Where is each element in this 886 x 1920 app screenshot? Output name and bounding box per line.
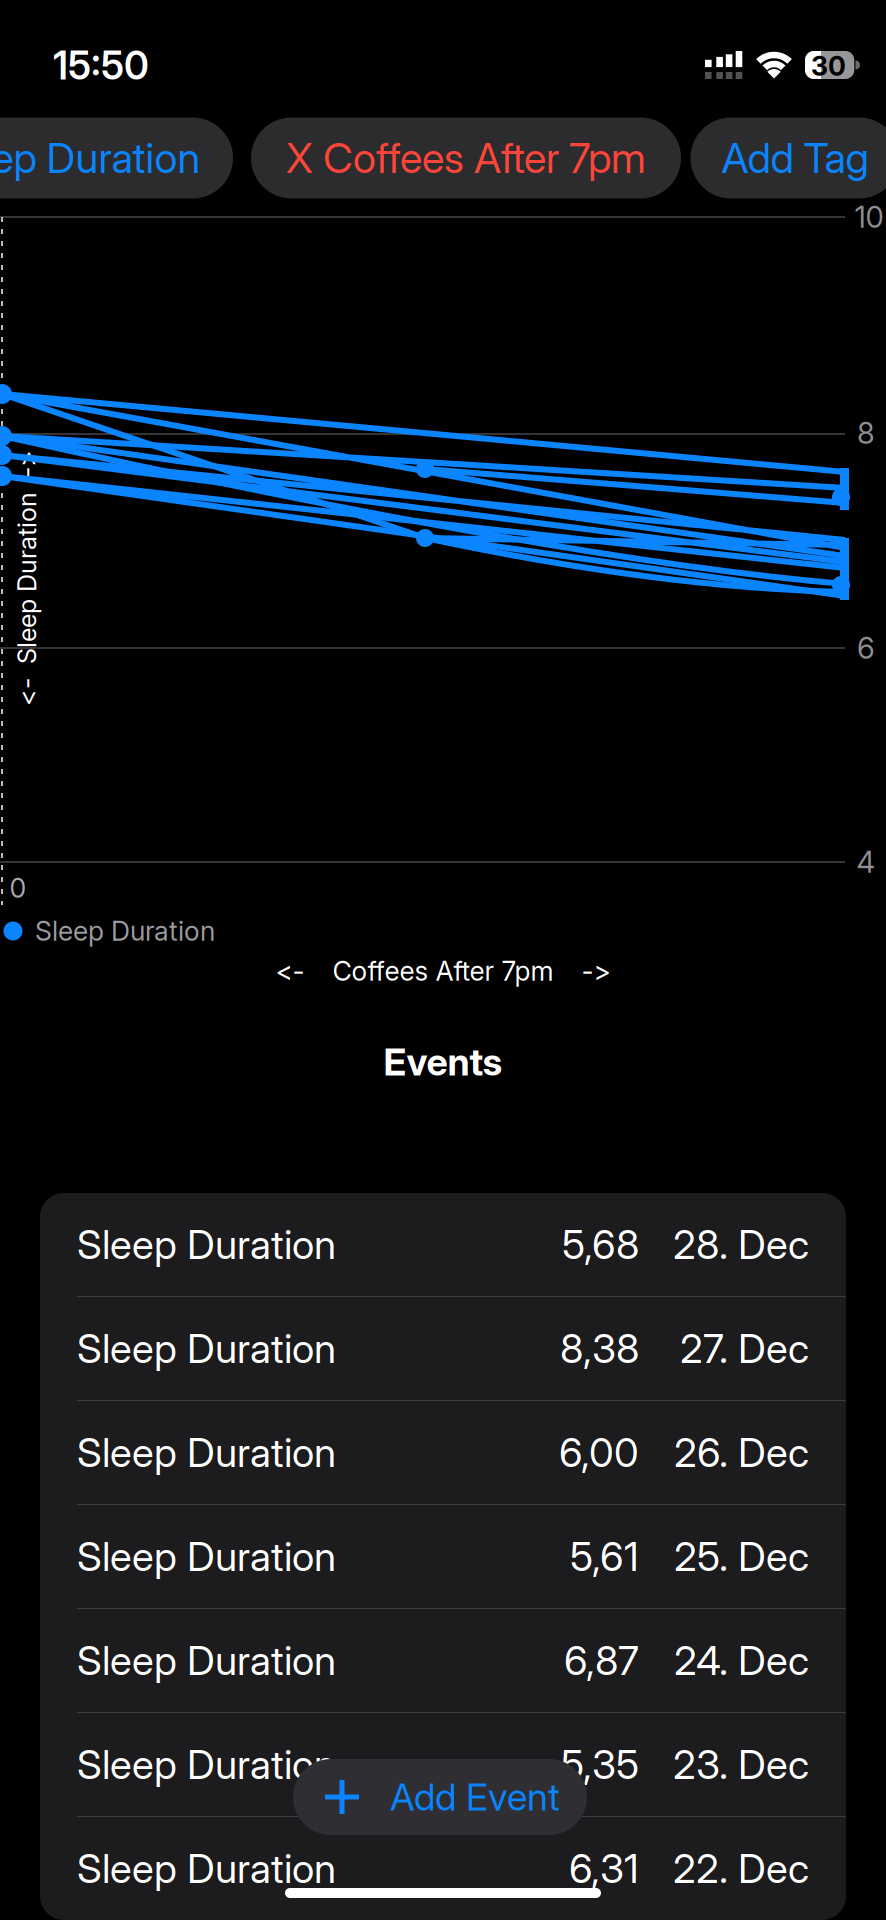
button[interactable]: Previous tag [275, 955, 304, 987]
staticText: 6,00 [559, 1429, 639, 1476]
button[interactable]: Add Event [293, 1759, 587, 1835]
button[interactable]: Sleep Duration [40, 1193, 846, 1296]
button[interactable]: Sleep Duration [40, 1609, 846, 1712]
staticText: 26. Dec [674, 1429, 809, 1476]
staticText: 15:50 [53, 43, 149, 88]
staticText: 22. Dec [673, 1845, 809, 1892]
staticText: 0 [9, 872, 26, 904]
staticText: 8 [857, 416, 875, 450]
staticText: Sleep Duration [77, 1533, 336, 1580]
button[interactable]: Sleep Duration [40, 1817, 846, 1920]
staticText: Events [383, 1040, 502, 1084]
staticText: Sleep Duration [77, 1741, 336, 1788]
staticText: Sleep Duration [77, 1637, 336, 1684]
staticText: 24. Dec [674, 1637, 809, 1684]
button[interactable]: Sleep Duration [40, 1401, 846, 1504]
button[interactable]: Sleep Duration [40, 1297, 846, 1400]
staticText: Sleep Duration [77, 1845, 336, 1892]
staticText: -‌> [581, 955, 610, 987]
staticText: Sleep Duration [0, 134, 200, 182]
staticText: 30 [811, 50, 846, 82]
staticText: <‌- Sleep Duration -‌> [0, 563, 155, 593]
staticText: Sleep Duration [35, 915, 215, 947]
staticText: Sleep Duration [77, 1325, 336, 1372]
staticText: 23. Dec [673, 1741, 809, 1788]
staticText: 6,31 [569, 1845, 639, 1892]
staticText: 5,61 [570, 1533, 639, 1580]
button[interactable]: Sleep Duration [40, 1505, 846, 1608]
staticText: 28. Dec [673, 1221, 809, 1268]
staticText: Add Event [390, 1775, 560, 1819]
staticText: 4 [856, 845, 875, 879]
staticText: Sleep Duration [77, 1429, 336, 1476]
staticText [440, 1880, 446, 1906]
button[interactable]: Sleep Duration [40, 1713, 846, 1816]
staticText: 25. Dec [674, 1533, 809, 1580]
staticText: 27. Dec [680, 1325, 809, 1372]
button[interactable]: Sleep Duration [0, 117, 233, 198]
staticText: 8,38 [560, 1325, 639, 1372]
staticText: <‌- [275, 955, 304, 987]
staticText: 5,35 [561, 1741, 639, 1788]
button[interactable]: Add Tag [690, 117, 886, 198]
staticText: 10 [854, 200, 883, 234]
staticText: Sleep Duration [77, 1221, 336, 1268]
staticText: 6,87 [564, 1637, 639, 1684]
staticText: Add Tag [721, 134, 868, 182]
button[interactable]: Next tag [581, 955, 610, 987]
staticText: 5,68 [562, 1221, 639, 1268]
staticText: X Coffees After 7pm [286, 134, 646, 182]
button[interactable]: X Coffees After 7pm [251, 117, 681, 198]
staticText: Coffees After 7pm [332, 955, 553, 987]
staticText: 6 [857, 631, 875, 665]
